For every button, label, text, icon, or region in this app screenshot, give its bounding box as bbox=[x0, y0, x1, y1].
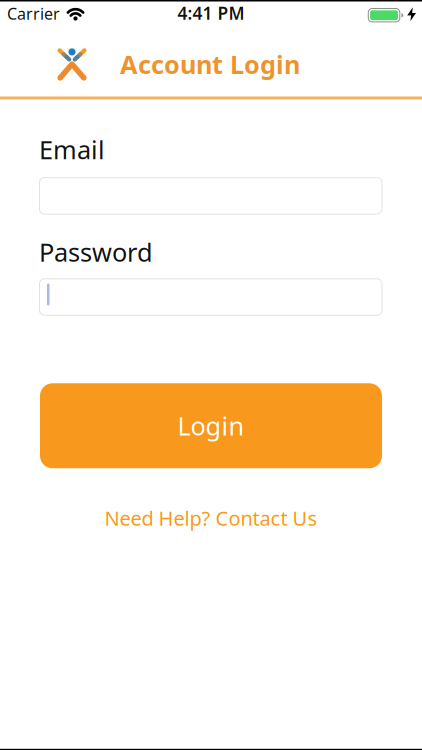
staticText: Carrier bbox=[7, 3, 60, 24]
button[interactable]: Email text field bbox=[39, 177, 382, 215]
button[interactable]: Password text field bbox=[39, 278, 382, 316]
button[interactable]: Need Help? Contact Us bbox=[104, 505, 317, 531]
staticText: Password bbox=[39, 235, 153, 269]
staticText: Email bbox=[39, 132, 105, 166]
button[interactable]: Login bbox=[40, 383, 382, 468]
staticText: Need Help? Contact Us bbox=[104, 505, 317, 531]
staticText: 4:41 PM bbox=[177, 1, 244, 24]
staticText: Account Login bbox=[120, 47, 300, 81]
staticText: Login bbox=[177, 409, 244, 443]
